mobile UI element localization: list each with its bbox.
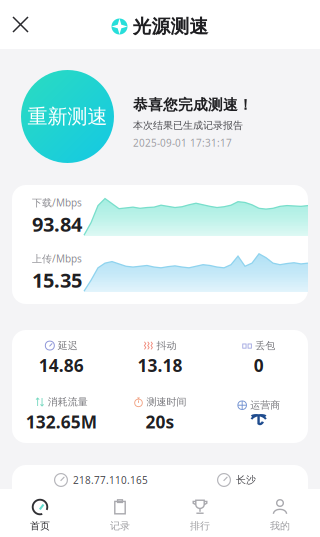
staticText: 丢包 — [255, 340, 275, 352]
staticText: 15.35 — [32, 267, 82, 293]
button[interactable]: 我的 — [240, 489, 320, 537]
staticText: 上传/Mbps — [32, 252, 82, 265]
button[interactable]: Close — [0, 0, 41, 49]
staticText: 首页 — [30, 520, 50, 532]
staticText: 记录 — [110, 520, 130, 532]
button[interactable]: 重新测速 — [21, 70, 114, 163]
button[interactable]: 排行 — [160, 489, 240, 537]
staticText: 20s — [145, 410, 174, 433]
staticText: 长沙 — [236, 474, 256, 486]
staticText: 运营商 — [250, 399, 280, 411]
staticText: 我的 — [270, 520, 290, 532]
staticText: 93.84 — [32, 211, 82, 237]
staticText: 132.65M — [26, 410, 97, 433]
button[interactable]: 首页 — [0, 489, 80, 537]
staticText: 本次结果已生成记录报告 — [133, 120, 243, 132]
staticText: 消耗流量 — [48, 396, 88, 408]
staticText: 重新测速 — [27, 104, 107, 128]
staticText: 下载/Mbps — [32, 196, 82, 209]
staticText: 14.86 — [39, 354, 84, 376]
staticText: 排行 — [190, 520, 210, 532]
button[interactable]: 记录 — [80, 489, 160, 537]
staticText: 测速时间 — [146, 396, 186, 408]
staticText: 延迟 — [58, 340, 78, 352]
staticText: 218.77.110.165 — [73, 473, 148, 486]
staticText: 2025-09-01 17:31:17 — [133, 136, 232, 149]
staticText: 恭喜您完成测速！ — [133, 96, 253, 114]
staticText: 0 — [254, 354, 264, 376]
staticText: 光源测速 — [132, 15, 208, 38]
staticText: 抖动 — [156, 340, 176, 352]
staticText: 13.18 — [137, 354, 182, 376]
